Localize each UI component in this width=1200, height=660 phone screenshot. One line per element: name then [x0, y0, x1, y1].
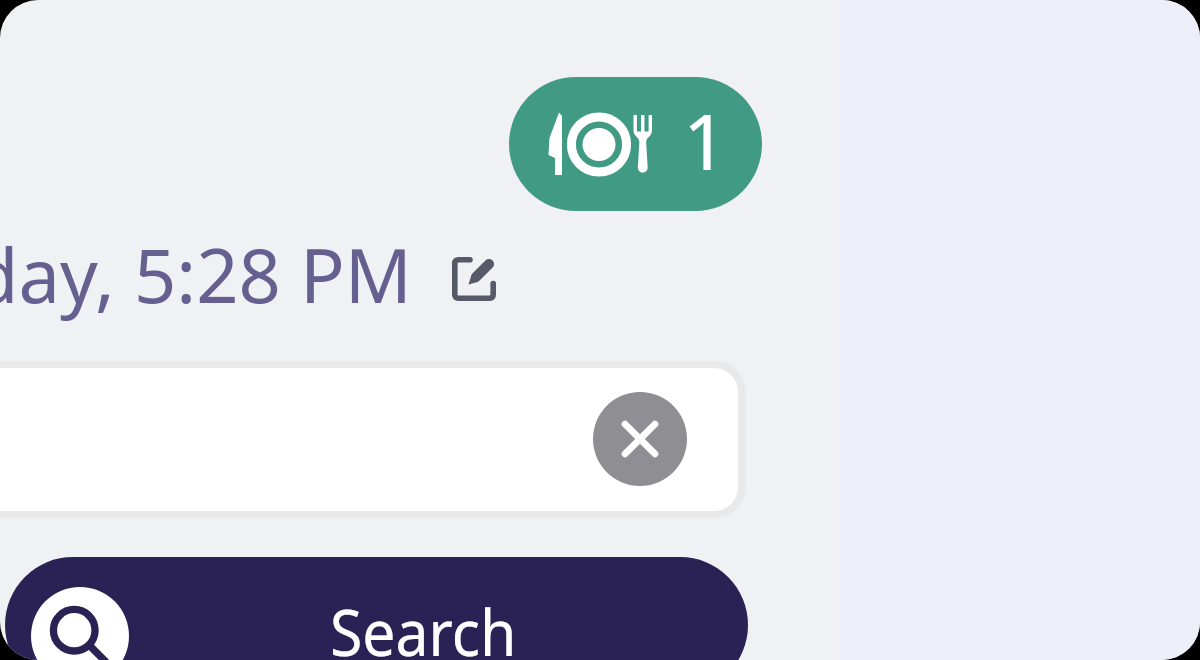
button[interactable]: 1 restaurant: [509, 77, 762, 211]
staticText: Search: [330, 589, 517, 660]
staticText: Sunday, 5:28 PM: [0, 224, 412, 325]
button[interactable]: Clear: [593, 392, 687, 486]
button[interactable]: Edit: [440, 246, 506, 312]
button[interactable]: [0, 368, 738, 511]
staticText: 1: [683, 88, 728, 193]
button[interactable]: Search: [5, 557, 748, 660]
